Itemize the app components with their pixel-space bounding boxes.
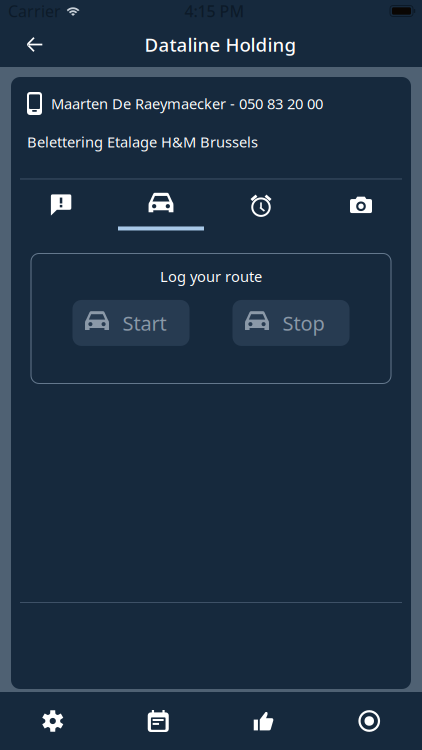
- button[interactable]: Approvals: [211, 692, 316, 750]
- staticText: Start: [122, 310, 166, 336]
- button[interactable]: Agenda: [105, 692, 211, 750]
- staticText: Dataline Holding: [144, 32, 296, 57]
- button[interactable]: Notes: [11, 191, 111, 230]
- staticText: 4:15 PM: [184, 0, 244, 22]
- button[interactable]: Clock in: [316, 692, 422, 750]
- button[interactable]: Stop: [232, 300, 349, 346]
- button[interactable]: Route: [111, 191, 211, 230]
- staticText: Belettering Etalage H&M Brussels: [27, 132, 258, 151]
- staticText: Carrier: [8, 0, 61, 22]
- staticText: Maarten De Raeymaecker - 050 83 20 00: [51, 94, 323, 113]
- button[interactable]: Settings: [0, 692, 105, 750]
- staticText: Log your route: [160, 266, 262, 286]
- staticText: Stop: [282, 310, 324, 336]
- button[interactable]: Timesheet: [211, 191, 311, 230]
- button[interactable]: Start: [72, 300, 189, 346]
- button[interactable]: Back: [0, 22, 61, 67]
- button[interactable]: Photos: [311, 191, 411, 230]
